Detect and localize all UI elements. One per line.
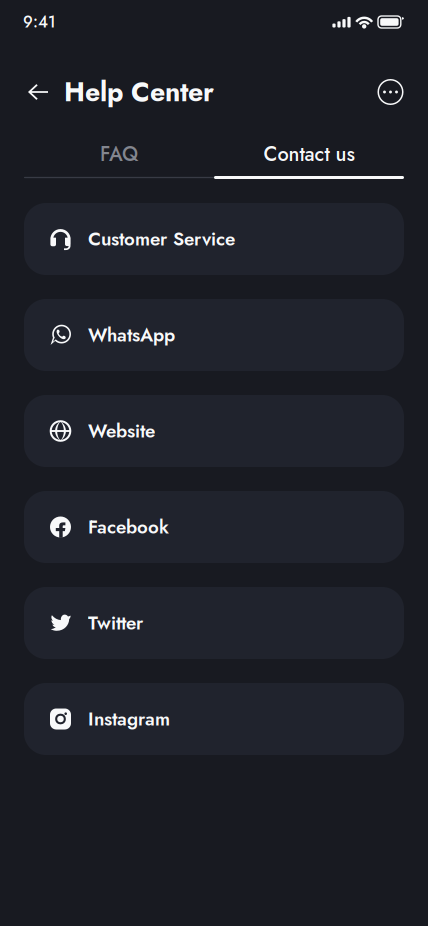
- button[interactable]: Website: [24, 395, 404, 467]
- button[interactable]: Contact us: [214, 142, 404, 176]
- staticText: WhatsApp: [88, 321, 175, 348]
- button[interactable]: Customer Service: [24, 203, 404, 275]
- button[interactable]: Facebook: [24, 491, 404, 563]
- button[interactable]: More options: [377, 76, 404, 108]
- staticText: Help Center: [64, 73, 214, 111]
- staticText: Instagram: [88, 705, 170, 732]
- staticText: FAQ: [100, 139, 138, 168]
- button[interactable]: Back: [24, 76, 52, 108]
- staticText: Customer Service: [88, 225, 235, 252]
- staticText: Website: [88, 417, 155, 444]
- button[interactable]: Instagram: [24, 683, 404, 755]
- staticText: Contact us: [263, 139, 354, 168]
- staticText: Facebook: [88, 513, 169, 540]
- button[interactable]: FAQ: [24, 142, 214, 176]
- button[interactable]: Twitter: [24, 587, 404, 659]
- staticText: 9:41: [23, 10, 56, 33]
- staticText: Twitter: [88, 609, 143, 636]
- button[interactable]: WhatsApp: [24, 299, 404, 371]
